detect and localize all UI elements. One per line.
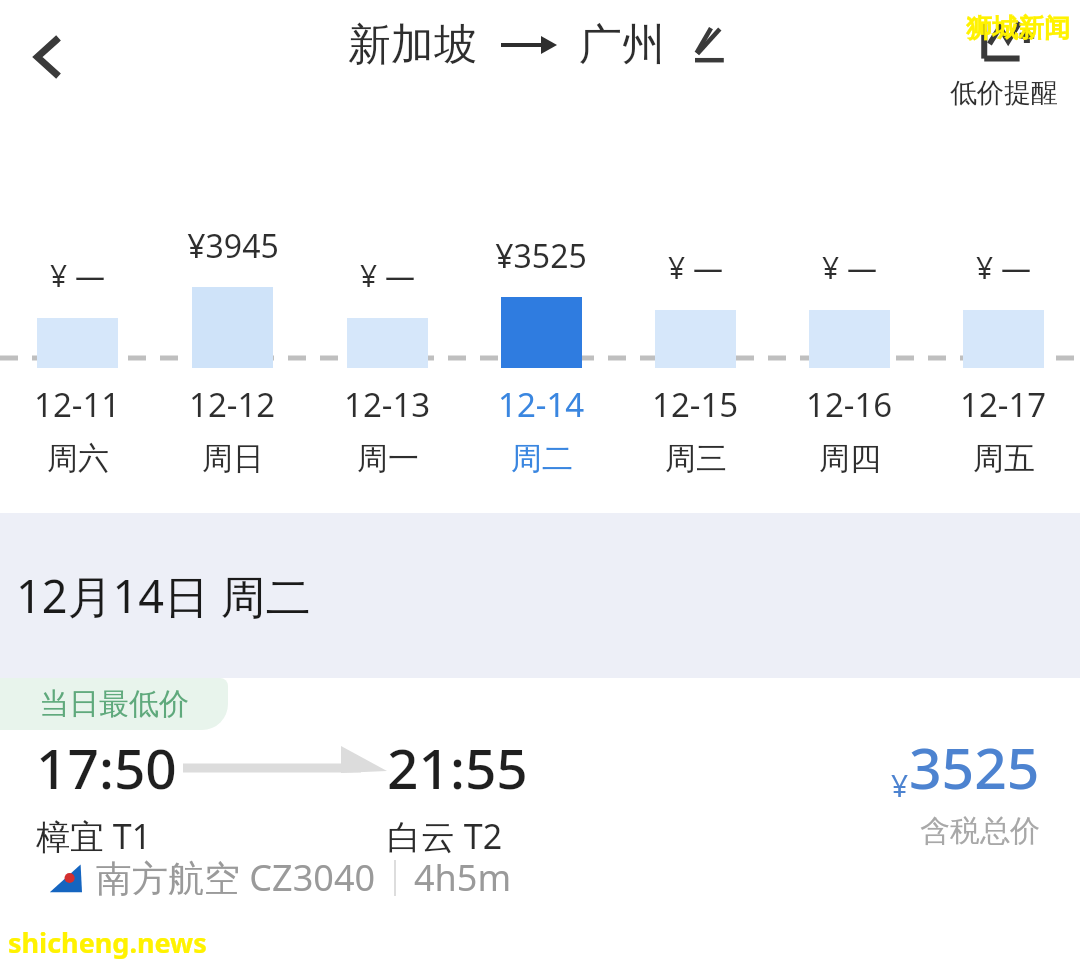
button[interactable]: ¥3945: [155, 0, 310, 513]
staticText: ¥3525: [495, 234, 587, 278]
staticText: 周五: [973, 439, 1035, 478]
staticText: 4h5m: [414, 853, 512, 902]
button[interactable]: 低价提醒: [934, 10, 1074, 110]
staticText: 12月14日 周二: [16, 565, 311, 626]
staticText: 12-13: [344, 382, 431, 427]
button[interactable]: Back: [0, 9, 96, 105]
staticText: 周二: [511, 439, 573, 478]
staticText: 樟宜 T1: [36, 813, 152, 859]
staticText: 21:55: [387, 730, 528, 805]
staticText: 12-11: [34, 382, 121, 427]
staticText: 狮城新闻: [966, 12, 1070, 45]
button[interactable]: Edit: [681, 19, 733, 71]
staticText: ¥ —: [822, 247, 877, 288]
staticText: 12-12: [189, 382, 276, 427]
button[interactable]: ¥3525: [464, 0, 618, 513]
staticText: shicheng.news: [8, 924, 207, 961]
staticText: 周日: [202, 439, 264, 478]
staticText: ¥ —: [976, 247, 1031, 288]
button[interactable]: ¥ —: [772, 0, 926, 513]
staticText: 南方航空 CZ3040: [96, 853, 376, 902]
staticText: ¥ —: [668, 247, 723, 288]
staticText: 3525: [909, 728, 1040, 806]
button[interactable]: ¥ —: [926, 0, 1080, 513]
staticText: ¥ —: [360, 255, 415, 296]
staticText: ¥: [891, 765, 909, 806]
staticText: 12-15: [652, 382, 739, 427]
staticText: 周三: [665, 439, 727, 478]
staticText: 广州: [579, 18, 665, 72]
staticText: 17:50: [36, 730, 177, 805]
button[interactable]: ¥ —: [310, 0, 464, 513]
staticText: ¥ —: [50, 255, 105, 296]
staticText: 白云 T2: [387, 813, 503, 859]
staticText: 12-16: [806, 382, 893, 427]
button[interactable]: 当日最低价: [0, 678, 1080, 965]
staticText: 12-14: [498, 382, 585, 427]
staticText: ¥3945: [187, 224, 279, 268]
staticText: 当日最低价: [39, 685, 189, 723]
staticText: 周四: [819, 439, 881, 478]
staticText: 周一: [357, 439, 419, 478]
staticText: 12-17: [960, 382, 1047, 427]
button[interactable]: ¥ —: [0, 0, 155, 513]
staticText: 低价提醒: [950, 76, 1058, 110]
button[interactable]: ¥ —: [618, 0, 772, 513]
staticText: 新加坡: [348, 18, 477, 72]
staticText: 含税总价: [920, 812, 1040, 850]
staticText: 周六: [47, 439, 109, 478]
